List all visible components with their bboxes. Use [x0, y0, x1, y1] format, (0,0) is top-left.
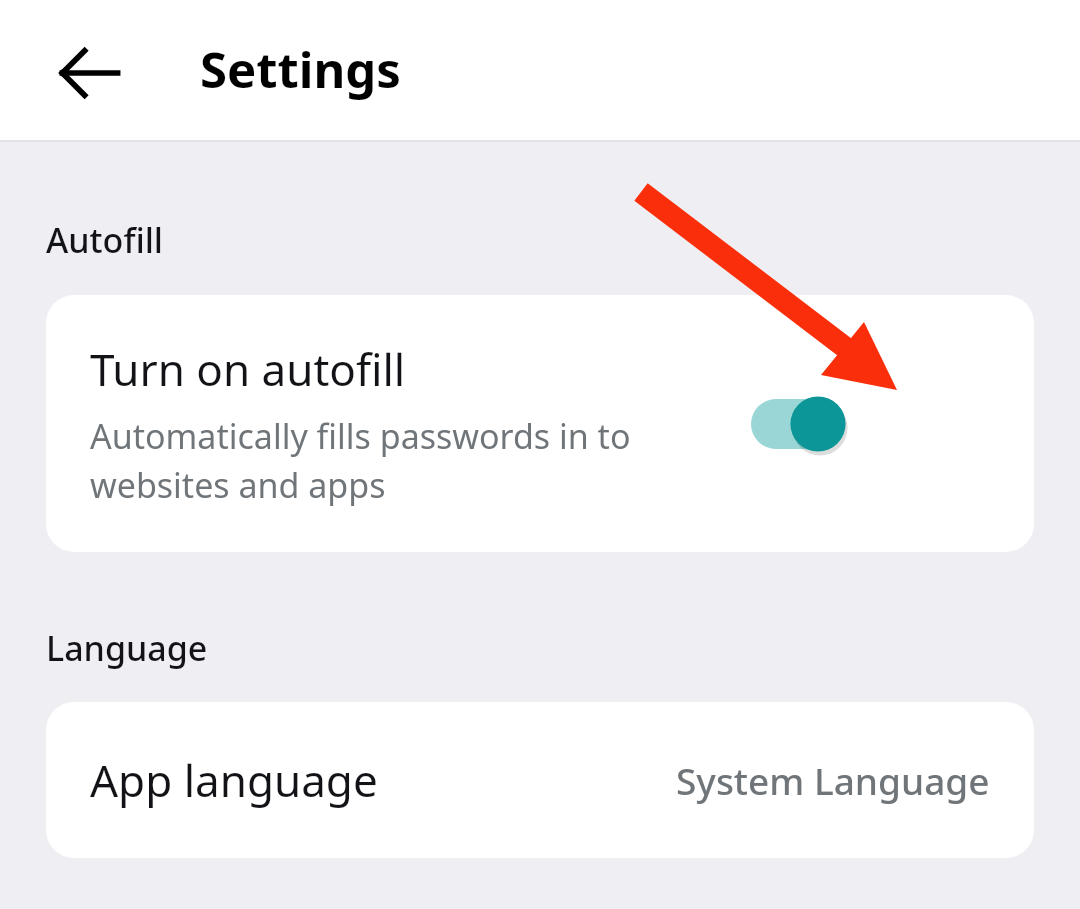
staticText: System Language: [676, 755, 990, 805]
staticText: Settings: [200, 36, 401, 103]
button[interactable]: App language: [46, 702, 1034, 858]
button[interactable]: Back: [42, 25, 138, 121]
button[interactable]: Turn on autofill toggle: [751, 384, 867, 464]
staticText: Automatically fills passwords in to webs…: [90, 413, 750, 508]
button[interactable]: Turn on autofill: [46, 295, 1034, 552]
staticText: App language: [90, 750, 378, 810]
staticText: Autofill: [46, 217, 164, 263]
staticText: Turn on autofill: [90, 339, 406, 399]
staticText: Language: [46, 625, 208, 671]
